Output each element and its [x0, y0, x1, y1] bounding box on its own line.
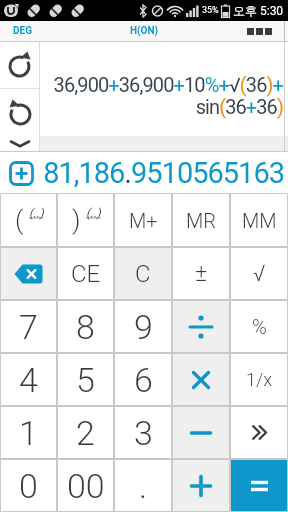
button[interactable] — [0, 136, 39, 151]
button[interactable]: ± — [173, 248, 229, 299]
staticText: ) — [72, 205, 81, 235]
button[interactable] — [173, 301, 229, 352]
staticText: 3 — [134, 413, 153, 453]
staticText: DEG — [13, 25, 32, 37]
button[interactable]: . — [115, 460, 171, 511]
button[interactable]: CE — [58, 248, 113, 299]
button[interactable]: ) — [58, 194, 113, 246]
staticText: ± — [195, 260, 208, 287]
button[interactable]: 5 — [58, 354, 113, 405]
button[interactable]: 1 — [1, 407, 56, 458]
staticText: 1/x — [246, 369, 272, 390]
button[interactable] — [231, 407, 287, 458]
staticText: 9 — [134, 307, 153, 347]
button[interactable]: ( — [1, 194, 56, 246]
staticText: 5 — [76, 360, 95, 400]
staticText: 36,900+36,900+10%+√(36)+ sin(36+36) — [40, 73, 283, 119]
staticText: ( — [15, 205, 24, 235]
button[interactable]: % — [231, 301, 287, 352]
button[interactable]: 00 — [58, 460, 113, 511]
staticText: 0 — [19, 466, 38, 506]
staticText: C — [135, 260, 151, 288]
button[interactable]: 3 — [115, 407, 171, 458]
staticText: 1 — [19, 413, 38, 453]
button[interactable] — [231, 460, 287, 511]
staticText: 81,186.9510565163 — [33, 156, 284, 190]
staticText: √ — [253, 260, 266, 287]
button[interactable]: 6 — [115, 354, 171, 405]
staticText: . — [139, 466, 148, 506]
button[interactable] — [9, 161, 33, 185]
staticText: CE — [71, 260, 101, 288]
button[interactable]: 8 — [58, 301, 113, 352]
button[interactable] — [173, 354, 229, 405]
button[interactable]: MM — [231, 194, 287, 246]
button[interactable]: C — [115, 248, 171, 299]
button[interactable]: 9 — [115, 301, 171, 352]
button[interactable]: MR — [173, 194, 229, 246]
button[interactable] — [1, 248, 56, 299]
staticText: 2 — [76, 413, 95, 453]
staticText: MR — [186, 209, 217, 232]
button[interactable]: 2 — [58, 407, 113, 458]
button[interactable]: 7 — [1, 301, 56, 352]
staticText: MM — [242, 209, 277, 232]
staticText: 오후 5:30 — [233, 3, 284, 18]
button[interactable]: 0 — [1, 460, 56, 511]
button[interactable] — [173, 460, 229, 511]
button[interactable] — [247, 28, 272, 35]
staticText: 00 — [67, 466, 105, 506]
button[interactable]: √ — [231, 248, 287, 299]
button[interactable] — [173, 407, 229, 458]
staticText: 8 — [76, 307, 95, 347]
staticText: H(ON) — [130, 25, 159, 37]
button[interactable]: M+ — [115, 194, 171, 246]
staticText: 6 — [134, 360, 153, 400]
button[interactable]: 1/x — [231, 354, 287, 405]
button[interactable]: 4 — [1, 354, 56, 405]
staticText: (..) — [29, 206, 44, 220]
button[interactable] — [0, 89, 39, 136]
staticText: 7 — [19, 307, 38, 347]
button[interactable] — [0, 42, 39, 88]
staticText: M+ — [129, 209, 158, 232]
staticText: 35% — [202, 5, 219, 16]
staticText: 4 — [19, 360, 38, 400]
staticText: % — [252, 315, 267, 338]
staticText: (..) — [86, 206, 101, 220]
